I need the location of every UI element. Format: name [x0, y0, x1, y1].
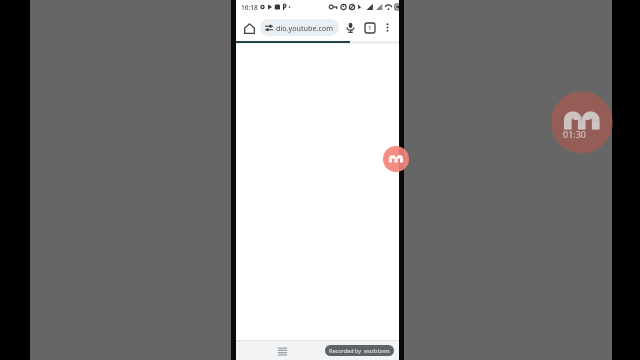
button[interactable]: More options — [379, 19, 396, 36]
staticText: dio.youtube.com — [276, 23, 333, 33]
staticText: 1 — [368, 24, 372, 32]
button[interactable]: Home — [239, 18, 259, 38]
button[interactable]: Voice search — [341, 18, 360, 37]
button[interactable]: Switch tabs — [360, 18, 379, 37]
staticText: 01:30 — [563, 128, 587, 140]
staticText: 16:18 — [241, 3, 258, 12]
button[interactable]: dio.youtube.com — [260, 19, 339, 36]
button[interactable]: Menu — [274, 343, 290, 359]
staticText: Recorded by — [329, 347, 362, 354]
staticText: mobizen — [364, 347, 390, 355]
